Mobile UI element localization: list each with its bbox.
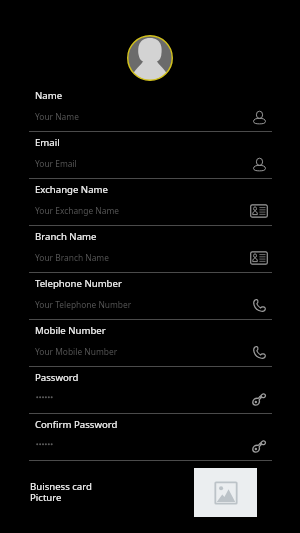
button[interactable]: Profile photo <box>127 35 173 81</box>
button[interactable]: Name <box>250 108 268 126</box>
button[interactable]: Confirm password <box>250 437 268 455</box>
staticText: Branch Name <box>35 230 97 243</box>
button[interactable]: Telephone <box>250 296 268 314</box>
staticText: Your Branch Name <box>35 252 109 263</box>
button[interactable]: Branch Name <box>0 226 300 273</box>
button[interactable]: Exchange Name <box>0 179 300 226</box>
button[interactable]: Mobile <box>250 343 268 361</box>
staticText: Mobile Number <box>35 324 106 337</box>
button[interactable]: Name <box>0 85 300 132</box>
staticText: Confirm Password <box>35 418 118 431</box>
staticText: Password <box>35 371 79 384</box>
staticText: Your Mobile Number <box>35 346 118 357</box>
button[interactable]: Exchange name <box>250 202 268 220</box>
button[interactable]: Telephone Number <box>0 273 300 320</box>
staticText: Your Name <box>35 111 79 122</box>
button[interactable]: Buisness card Picture <box>30 480 92 504</box>
staticText: Telephone Number <box>35 277 122 290</box>
staticText: Your Telephone Number <box>35 299 132 310</box>
button[interactable]: Confirm Password <box>0 414 300 461</box>
staticText: Email <box>35 136 60 149</box>
button[interactable]: Email <box>0 132 300 179</box>
button[interactable]: Password <box>250 390 268 408</box>
button[interactable]: Email <box>250 155 268 173</box>
button[interactable]: Branch name <box>250 249 268 267</box>
staticText: Exchange Name <box>35 183 108 196</box>
staticText: Your Exchange Name <box>35 205 120 216</box>
button[interactable]: Mobile Number <box>0 320 300 367</box>
staticText: Your Email <box>35 158 77 169</box>
button[interactable]: Password <box>0 367 300 414</box>
button[interactable]: Business card picture <box>194 468 257 517</box>
staticText: Name <box>35 89 63 102</box>
